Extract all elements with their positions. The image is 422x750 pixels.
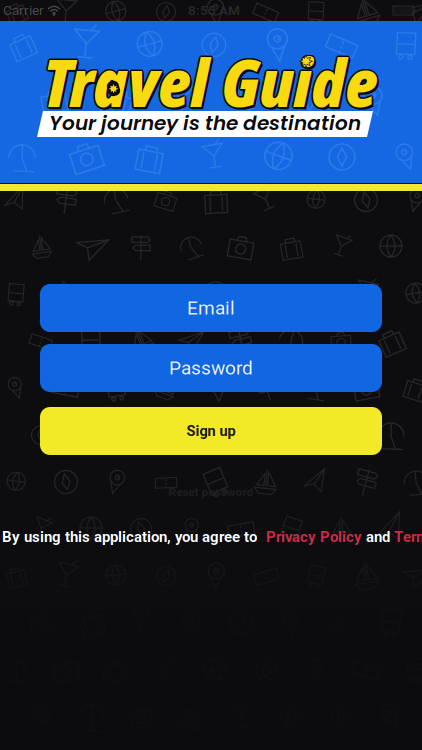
- staticText: Privacy Policy: [266, 528, 362, 546]
- staticText: Carrier: [3, 3, 44, 18]
- staticText: Travel Guide: [44, 39, 379, 127]
- button[interactable]: Reset password: [168, 485, 253, 499]
- staticText: 8:55 AM: [188, 3, 240, 18]
- staticText: Reset password: [168, 485, 253, 499]
- staticText: and: [362, 528, 394, 546]
- staticText: Password: [169, 357, 253, 379]
- button[interactable]: Privacy Policy: [266, 528, 362, 546]
- staticText: Terms of Service: [394, 528, 422, 546]
- staticText: Travel Guide: [42, 38, 377, 126]
- staticText: Your journey is the destination: [49, 109, 361, 137]
- button[interactable]: Password: [40, 344, 382, 392]
- staticText: Travel Guide: [44, 40, 379, 128]
- staticText: Travel Guide: [41, 37, 376, 125]
- staticText: Travel Guide: [42, 39, 377, 128]
- button[interactable]: Terms of Service: [394, 528, 422, 546]
- staticText: Sign up: [186, 422, 235, 439]
- staticText: Travel Guide: [44, 38, 379, 126]
- staticText: Travel Guide: [42, 36, 377, 125]
- button[interactable]: Sign up: [40, 407, 382, 455]
- staticText: Travel Guide: [41, 38, 376, 126]
- button[interactable]: Email: [40, 284, 382, 332]
- staticText: Travel Guide: [41, 39, 376, 127]
- staticText: By using this application, you agree to: [2, 528, 257, 546]
- staticText: Email: [187, 297, 235, 319]
- staticText: Travel Guide: [44, 37, 379, 125]
